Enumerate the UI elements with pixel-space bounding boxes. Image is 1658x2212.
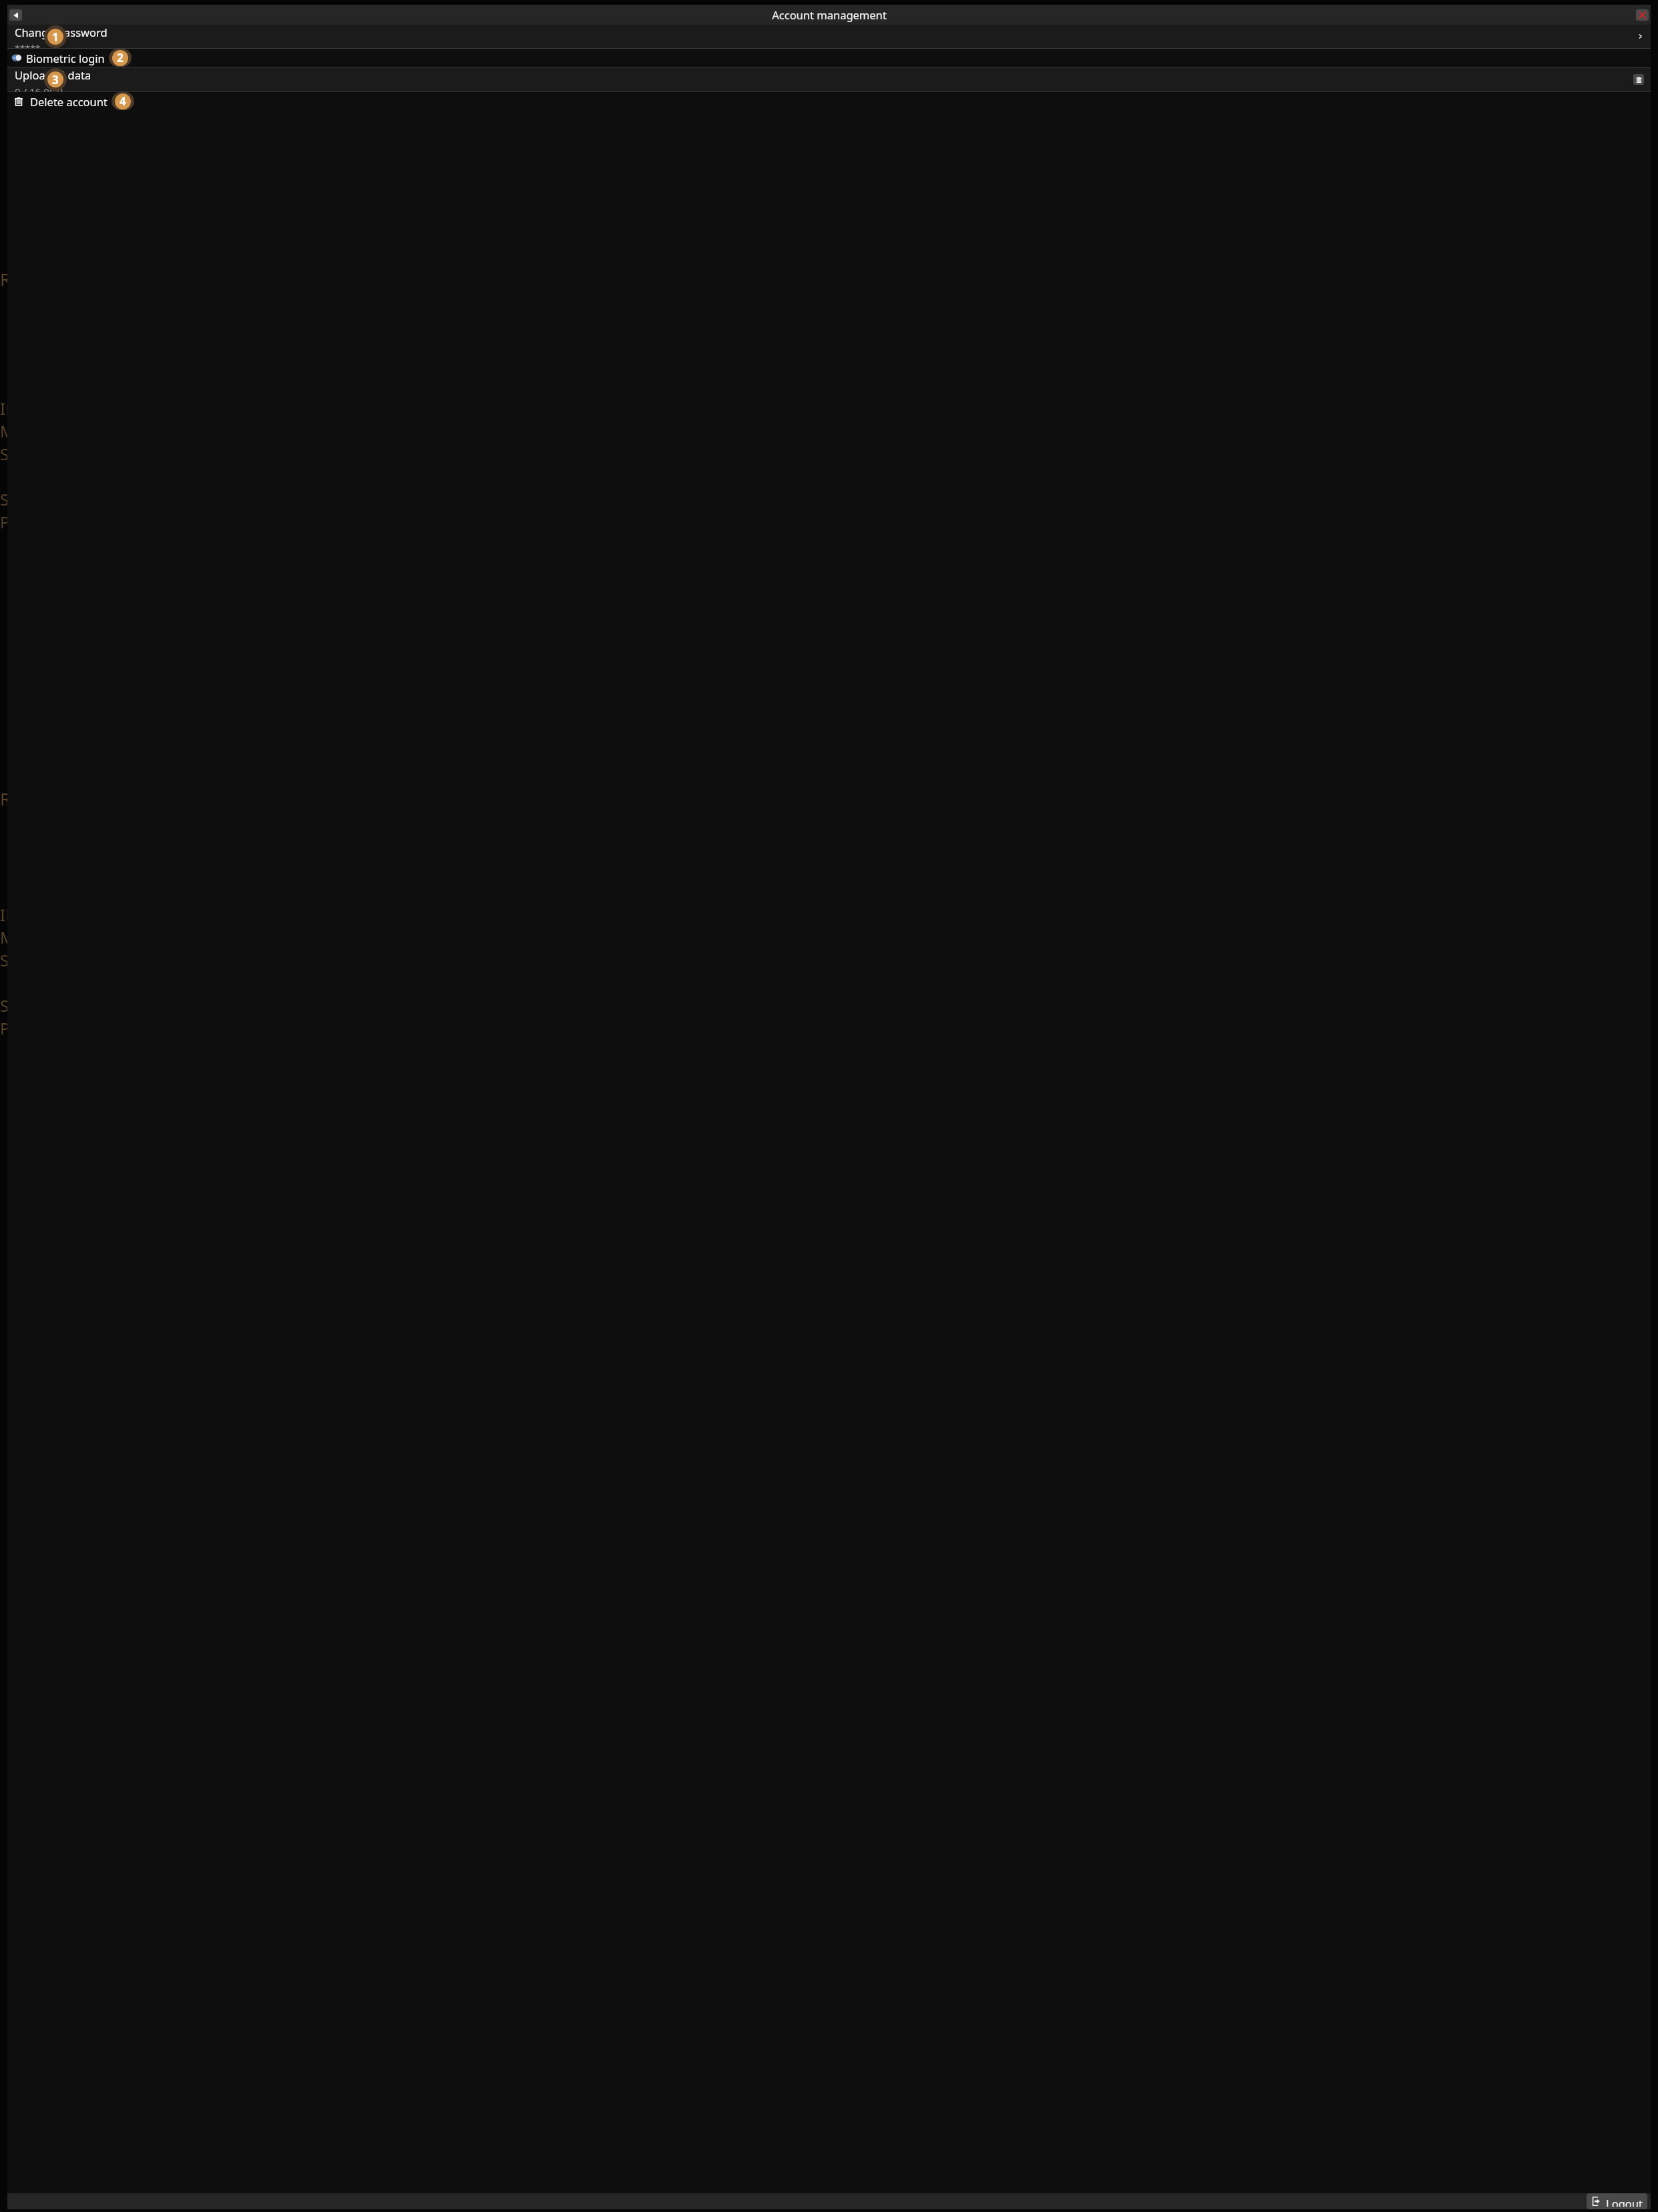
button[interactable]: Change password (7, 25, 1651, 48)
staticText: R (0, 787, 11, 810)
other: Biometric login toggle (12, 55, 21, 61)
staticText: ***** (15, 42, 41, 48)
button[interactable]: Back (9, 9, 22, 21)
staticText: 4 (120, 94, 126, 109)
staticText: Change password (15, 25, 108, 39)
staticText: Delete account (30, 94, 108, 109)
button[interactable]: Delete uploaded data (1633, 74, 1644, 85)
button[interactable]: Close (1636, 9, 1649, 21)
staticText: 1 (52, 29, 59, 45)
staticText: Uploaded data (15, 67, 91, 82)
button[interactable]: Biometric login toggle (7, 49, 1651, 67)
staticText: Biometric login (26, 51, 105, 65)
button[interactable]: Logout (1587, 2193, 1647, 2209)
button[interactable]: Uploaded data (7, 67, 1651, 91)
staticText: IN M S S P (0, 904, 18, 1039)
staticText: 0 / 16.0GB (15, 85, 63, 91)
button[interactable]: Delete account (7, 92, 1651, 110)
staticText: 3 (52, 72, 59, 87)
staticText: R (0, 267, 11, 291)
staticText: IN M S S P (0, 397, 18, 533)
staticText: 2 (117, 50, 124, 65)
staticText: Logout (1606, 2196, 1643, 2207)
staticText: Account management (772, 7, 887, 22)
